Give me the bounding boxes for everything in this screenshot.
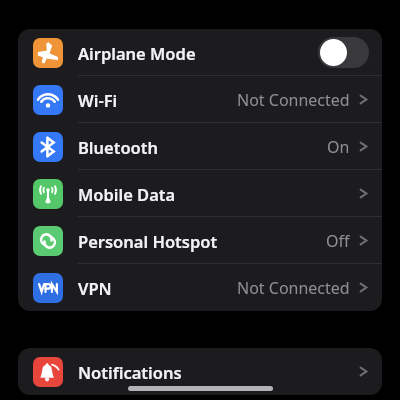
- staticText: Bluetooth: [78, 136, 159, 158]
- button[interactable]: VPN: [18, 264, 382, 311]
- staticText: Mobile Data: [78, 183, 176, 205]
- button[interactable]: Airplane Mode toggle, off: [318, 37, 369, 68]
- button[interactable]: Bluetooth: [18, 123, 382, 170]
- button[interactable]: Mobile Data: [18, 170, 382, 217]
- other: Notifications: [33, 357, 63, 387]
- staticText: Personal Hotspot: [78, 230, 218, 252]
- staticText: Off: [326, 230, 350, 252]
- other: Airplane Mode: [33, 38, 63, 68]
- staticText: Not Connected: [237, 277, 350, 299]
- other: Wi-Fi: [33, 85, 63, 115]
- staticText: Notifications: [78, 361, 182, 383]
- other: Bluetooth: [33, 132, 63, 162]
- staticText: Not Connected: [237, 89, 350, 111]
- other: VPN: [33, 273, 63, 303]
- staticText: Airplane Mode: [78, 42, 196, 64]
- staticText: On: [327, 136, 350, 158]
- button[interactable]: Personal Hotspot: [18, 217, 382, 264]
- staticText: VPN: [78, 277, 112, 299]
- button[interactable]: Notifications: [18, 348, 382, 395]
- other: Mobile Data: [33, 179, 63, 209]
- staticText: Wi-Fi: [78, 89, 118, 111]
- button[interactable]: Wi-Fi: [18, 76, 382, 123]
- button[interactable]: Airplane Mode: [18, 29, 382, 76]
- other: Personal Hotspot: [33, 226, 63, 256]
